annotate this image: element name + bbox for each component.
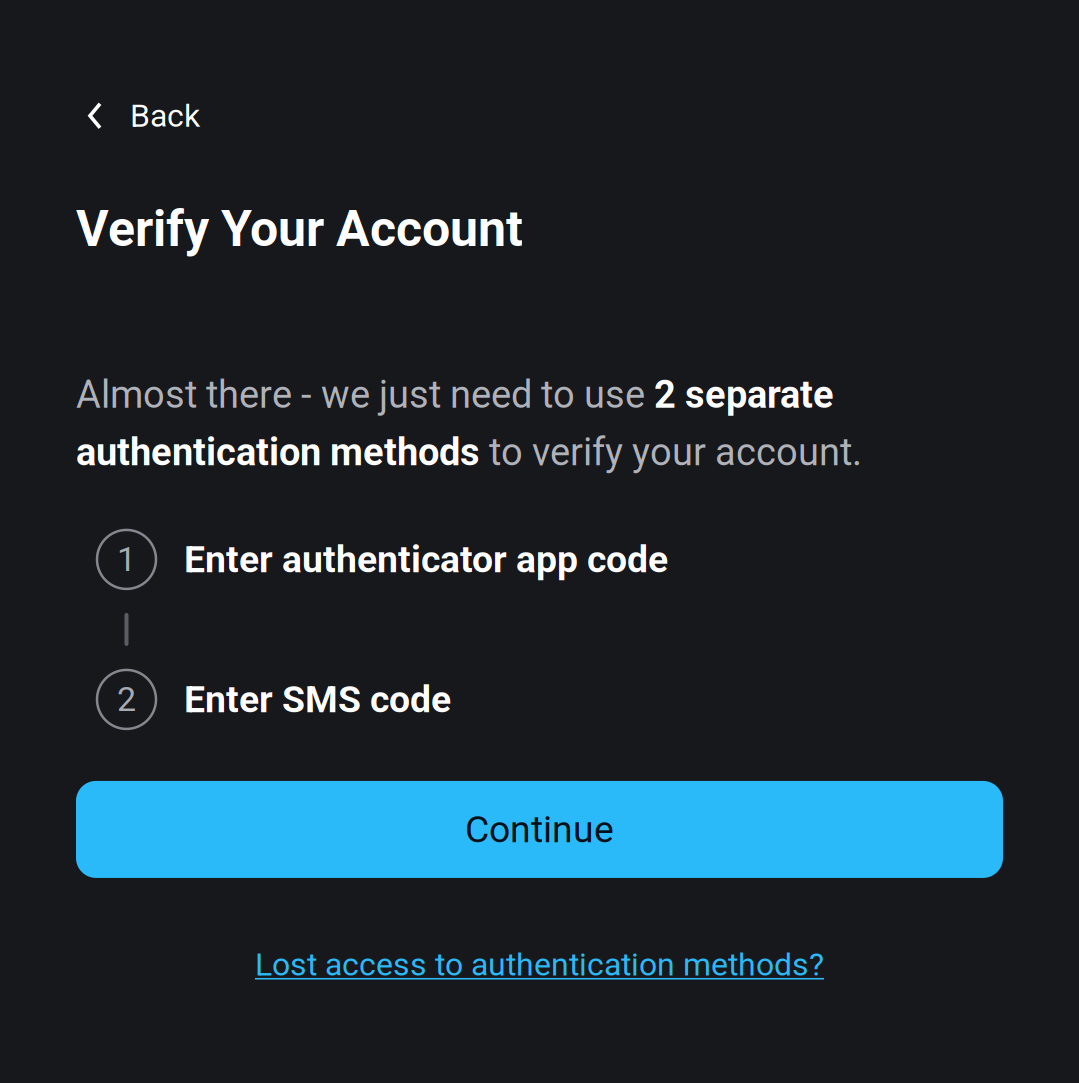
button[interactable]: Continue [76,781,1003,878]
button[interactable]: Lost access to authentication methods? [0,936,1079,993]
staticText: Almost there - we just need to use 2 sep… [76,373,862,474]
staticText: Enter SMS code [184,678,451,721]
button[interactable]: Back [0,83,224,148]
staticText: Verify Your Account [76,199,523,258]
staticText: Back [130,97,200,134]
staticText: Continue [465,808,614,851]
staticText: 1 [117,539,136,579]
staticText: Lost access to authentication methods? [255,946,824,983]
staticText: 2 [117,679,136,719]
staticText: Enter authenticator app code [184,538,668,581]
